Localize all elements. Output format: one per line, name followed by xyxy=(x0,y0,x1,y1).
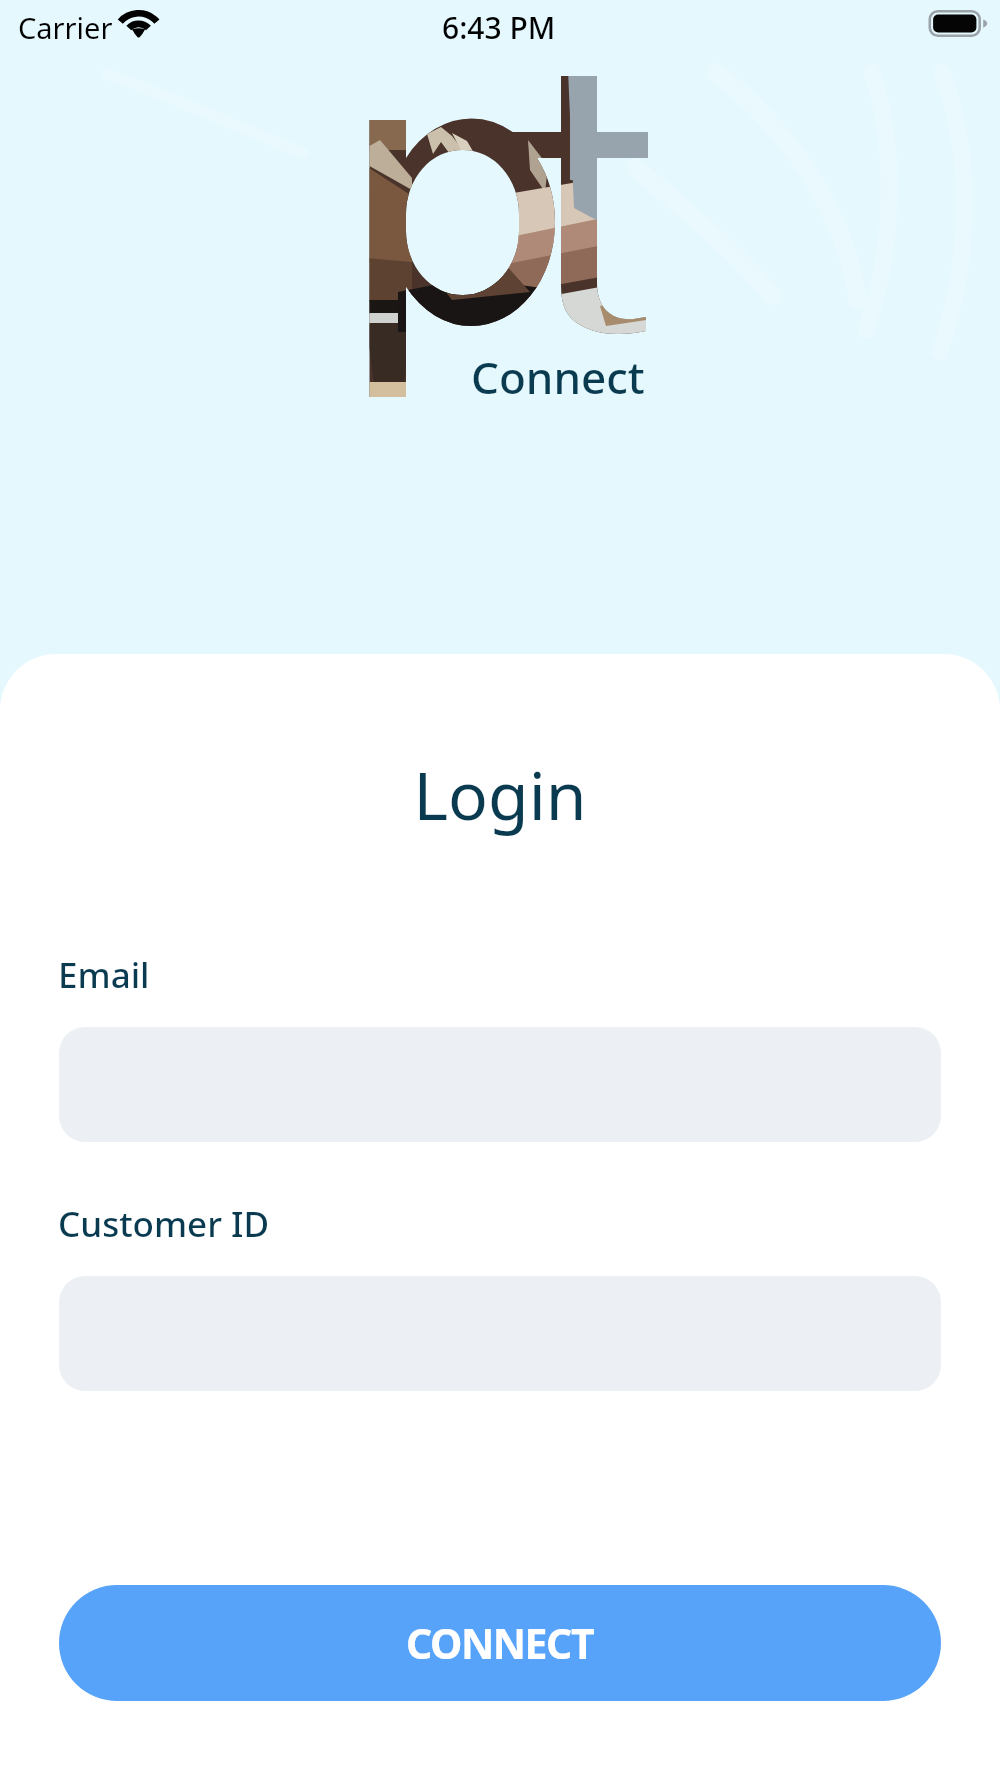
staticText: 6:43 PM xyxy=(442,7,556,48)
staticText: Login xyxy=(0,749,1000,839)
staticText: Email xyxy=(58,951,150,999)
staticText: Connect xyxy=(471,347,645,407)
staticText: Customer ID xyxy=(58,1200,270,1248)
staticText: Carrier xyxy=(18,8,113,47)
button[interactable]: CONNECT xyxy=(59,1585,941,1701)
staticText: CONNECT xyxy=(406,1615,594,1671)
